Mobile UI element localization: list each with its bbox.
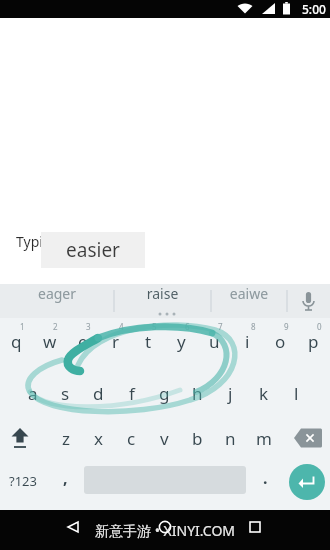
- staticText: c: [127, 427, 136, 450]
- staticText: i: [245, 330, 250, 353]
- staticText: easier: [66, 237, 120, 263]
- button[interactable]: v: [148, 421, 181, 455]
- staticText: g: [159, 382, 170, 405]
- staticText: o: [275, 330, 286, 353]
- button[interactable]: Voice input: [287, 284, 330, 318]
- staticText: .: [263, 467, 268, 489]
- staticText: 4: [119, 321, 124, 332]
- staticText: 8: [251, 321, 256, 332]
- staticText: 2: [53, 321, 58, 332]
- button[interactable]: z: [49, 421, 82, 455]
- staticText: 5:00: [302, 1, 326, 17]
- button[interactable]: eager: [0, 284, 114, 318]
- staticText: 7: [218, 321, 223, 332]
- staticText: h: [192, 382, 203, 405]
- button[interactable]: m: [247, 421, 280, 455]
- button[interactable]: p: [297, 320, 330, 356]
- staticText: a: [28, 382, 38, 405]
- staticText: l: [294, 382, 299, 405]
- button[interactable]: y: [165, 320, 198, 356]
- staticText: 3: [86, 321, 91, 332]
- button[interactable]: n: [214, 421, 247, 455]
- staticText: w: [43, 330, 57, 353]
- staticText: b: [192, 427, 203, 450]
- staticText: u: [209, 330, 220, 353]
- staticText: 6: [185, 321, 190, 332]
- button[interactable]: ,: [50, 464, 80, 498]
- staticText: f: [129, 382, 135, 405]
- staticText: m: [256, 427, 272, 450]
- button[interactable]: o: [264, 320, 297, 356]
- staticText: k: [259, 382, 269, 405]
- button[interactable]: l: [280, 376, 313, 410]
- button[interactable]: u: [198, 320, 231, 356]
- staticText: Typing is: [16, 232, 75, 251]
- staticText: s: [61, 382, 70, 405]
- button[interactable]: .: [250, 464, 280, 498]
- button[interactable]: j: [214, 376, 247, 410]
- staticText: 1: [20, 321, 25, 332]
- staticText: ,: [63, 467, 68, 489]
- staticText: z: [62, 427, 70, 450]
- staticText: x: [94, 427, 103, 450]
- button[interactable]: eaiwe: [211, 284, 287, 318]
- button[interactable]: Backspace: [288, 421, 330, 455]
- button[interactable]: b: [181, 421, 214, 455]
- button[interactable]: ?123: [0, 464, 46, 498]
- button[interactable]: x: [82, 421, 115, 455]
- staticText: n: [225, 427, 236, 450]
- button[interactable]: r: [99, 320, 132, 356]
- staticText: ?123: [9, 472, 37, 490]
- button[interactable]: s: [49, 376, 82, 410]
- staticText: q: [11, 330, 22, 353]
- button[interactable]: t: [132, 320, 165, 356]
- button[interactable]: raise: [114, 284, 211, 318]
- button[interactable]: Shift: [0, 421, 40, 455]
- staticText: raise: [114, 284, 211, 318]
- staticText: 5: [152, 321, 157, 332]
- button[interactable]: easier: [41, 232, 145, 268]
- button[interactable]: h: [181, 376, 214, 410]
- button[interactable]: i: [231, 320, 264, 356]
- button[interactable]: c: [115, 421, 148, 455]
- staticText: e: [78, 330, 88, 353]
- button[interactable]: e: [66, 320, 99, 356]
- button[interactable]: Enter: [289, 464, 325, 500]
- button[interactable]: q: [0, 320, 33, 356]
- button[interactable]: w: [33, 320, 66, 356]
- button[interactable]: d: [82, 376, 115, 410]
- staticText: d: [93, 382, 104, 405]
- staticText: 新意手游 • XINYI.COM: [95, 521, 236, 540]
- button[interactable]: a: [16, 376, 49, 410]
- staticText: 0: [317, 321, 322, 332]
- staticText: t: [145, 330, 152, 353]
- button[interactable]: g: [148, 376, 181, 410]
- staticText: y: [177, 330, 186, 353]
- staticText: r: [112, 330, 120, 353]
- staticText: v: [160, 427, 169, 450]
- staticText: p: [308, 330, 319, 353]
- staticText: 9: [284, 321, 289, 332]
- button[interactable]: k: [247, 376, 280, 410]
- staticText: j: [228, 382, 233, 405]
- button[interactable]: f: [115, 376, 148, 410]
